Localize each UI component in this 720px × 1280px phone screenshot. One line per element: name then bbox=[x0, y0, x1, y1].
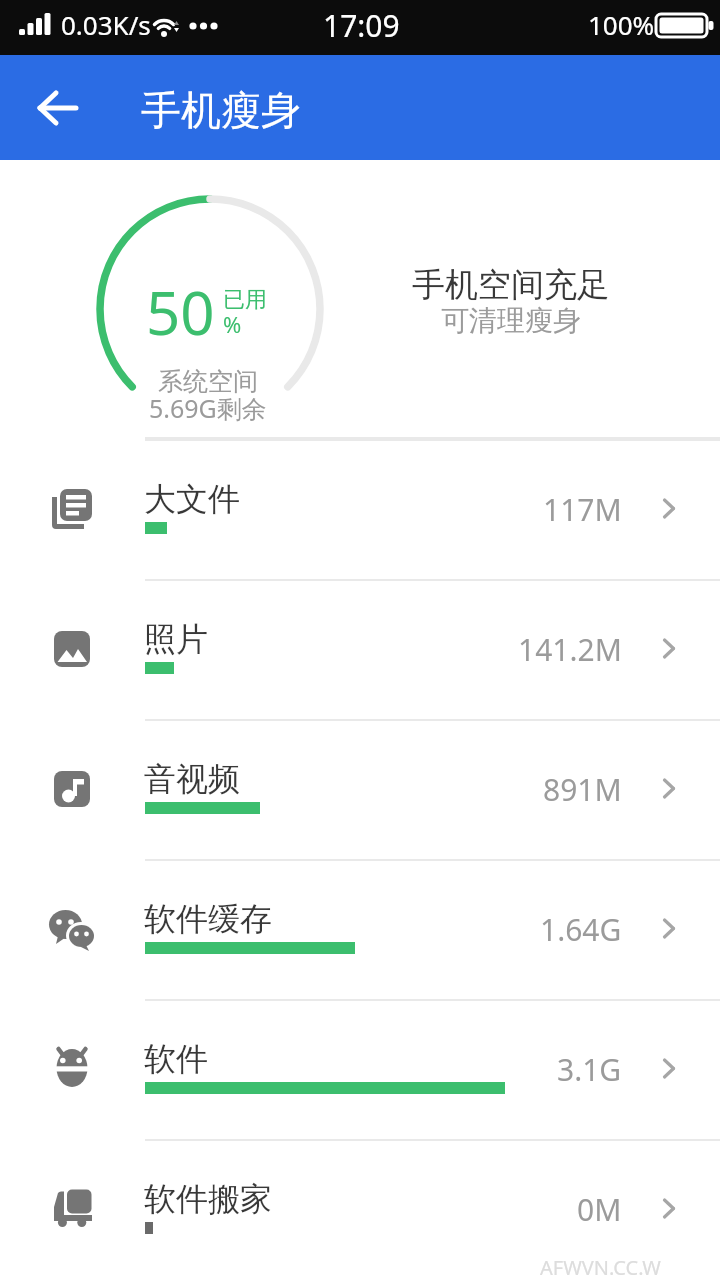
button[interactable]: 音视频 bbox=[0, 719, 720, 859]
staticText: 0M bbox=[577, 1189, 622, 1230]
staticText: 17:09 bbox=[323, 5, 400, 46]
staticText: % bbox=[223, 309, 242, 339]
staticText: 手机瘦身 bbox=[141, 85, 301, 135]
staticText: 5.69G剩余 bbox=[149, 391, 267, 425]
staticText: 软件缓存 bbox=[144, 899, 272, 939]
staticText: 117M bbox=[543, 489, 622, 530]
staticText: 1.64G bbox=[540, 909, 622, 950]
staticText: 50 bbox=[146, 271, 215, 353]
staticText: 大文件 bbox=[144, 479, 240, 519]
staticText: 手机空间充足 bbox=[412, 264, 610, 306]
button[interactable]: 软件搬家 bbox=[0, 1139, 720, 1279]
staticText: 已用 bbox=[223, 286, 267, 314]
button[interactable]: 软件缓存 bbox=[0, 859, 720, 999]
button[interactable]: 大文件 bbox=[0, 439, 720, 579]
staticText: 可清理瘦身 bbox=[441, 303, 581, 338]
button[interactable]: 照片 bbox=[0, 579, 720, 719]
staticText: 0.03K/s bbox=[61, 7, 151, 42]
staticText: 音视频 bbox=[144, 759, 240, 799]
staticText: 3.1G bbox=[557, 1049, 622, 1090]
staticText: 软件 bbox=[144, 1039, 208, 1079]
staticText: 软件搬家 bbox=[144, 1179, 272, 1219]
staticText: 100% bbox=[588, 7, 655, 42]
staticText: 照片 bbox=[144, 619, 208, 659]
staticText: 141.2M bbox=[518, 629, 622, 670]
staticText: AFWVN.CC.W bbox=[540, 1254, 661, 1280]
button[interactable]: 软件 bbox=[0, 999, 720, 1139]
staticText: 891M bbox=[543, 769, 622, 810]
staticText: 系统空间 bbox=[158, 366, 258, 397]
button[interactable] bbox=[20, 71, 96, 145]
